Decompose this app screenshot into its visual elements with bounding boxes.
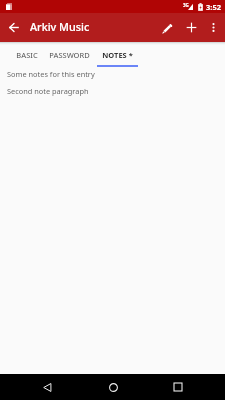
button[interactable]: BASIC (11, 45, 42, 67)
button[interactable]: NOTES * (97, 45, 138, 67)
staticText: NOTES * (102, 50, 133, 60)
button[interactable]: PASSWORD (42, 45, 97, 67)
button[interactable]: Edit (155, 13, 179, 42)
button[interactable]: Add (179, 13, 203, 42)
button[interactable]: Home (98, 374, 128, 400)
button[interactable]: Recent apps (163, 374, 193, 400)
staticText: 3:52 (206, 2, 221, 12)
staticText: PASSWORD (49, 50, 90, 60)
staticText: BASIC (16, 50, 38, 60)
staticText: Some notes for this entry (7, 69, 95, 79)
staticText: Arkiv Music (30, 19, 90, 34)
staticText: 3G (183, 2, 189, 8)
button[interactable]: Back (32, 374, 62, 400)
button[interactable]: Navigate up (0, 13, 28, 42)
button[interactable]: More options (203, 13, 225, 42)
staticText: Second note paragraph (7, 86, 89, 96)
